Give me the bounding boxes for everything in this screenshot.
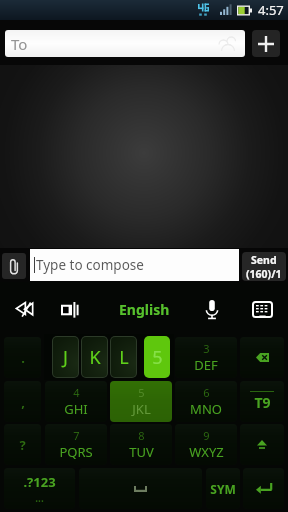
staticText: 4:57: [258, 1, 284, 19]
staticText: Send: [251, 253, 277, 267]
button[interactable]: Hide keyboard: [240, 287, 284, 331]
staticText: GHI: [64, 400, 88, 418]
staticText: TUV: [129, 443, 154, 461]
button[interactable]: Enter: [243, 468, 284, 509]
staticText: ?: [19, 436, 26, 454]
button[interactable]: To: [5, 30, 245, 57]
staticText: Type to compose: [36, 256, 144, 274]
button[interactable]: SYM: [206, 468, 240, 509]
staticText: PQRS: [59, 443, 93, 461]
button[interactable]: 8: [110, 424, 172, 465]
staticText: 2: [138, 341, 145, 356]
staticText: ABC: [129, 356, 154, 374]
button[interactable]: Sound off: [2, 286, 46, 330]
staticText: 6: [203, 385, 210, 400]
button[interactable]: K: [82, 337, 107, 377]
button[interactable]: Space: [79, 468, 202, 509]
button[interactable]: 5: [110, 381, 172, 422]
button[interactable]: 5: [144, 336, 170, 378]
staticText: L: [119, 345, 129, 370]
button[interactable]: Shift: [240, 424, 284, 465]
button[interactable]: 2: [110, 337, 172, 378]
staticText: J: [63, 345, 68, 370]
button[interactable]: .?123: [4, 468, 75, 509]
button[interactable]: T9: [240, 381, 284, 422]
button[interactable]: 4: [45, 381, 107, 422]
staticText: T9: [254, 393, 271, 412]
staticText: ...: [35, 491, 44, 505]
staticText: WXYZ: [189, 443, 224, 461]
button[interactable]: Backspace: [240, 337, 284, 378]
staticText: 1: [73, 341, 80, 356]
staticText: K: [89, 345, 101, 370]
staticText: To: [11, 34, 28, 54]
staticText: 4: [73, 385, 80, 400]
button[interactable]: 7: [45, 424, 107, 465]
button[interactable]: ?: [4, 424, 41, 465]
button[interactable]: L: [111, 337, 136, 377]
button[interactable]: English: [100, 287, 188, 331]
staticText: English: [119, 300, 170, 319]
button[interactable]: J: [53, 337, 78, 377]
staticText: 7: [73, 428, 80, 443]
staticText: (160)/1: [246, 267, 282, 281]
button[interactable]: Keyboard size: [49, 287, 93, 331]
staticText: MNO: [190, 400, 222, 418]
staticText: .?123: [23, 473, 56, 491]
staticText: JKL: [132, 400, 151, 418]
button[interactable]: 1: [45, 337, 107, 378]
button[interactable]: 6: [175, 381, 237, 422]
staticText: 9: [203, 428, 210, 443]
button[interactable]: .: [4, 337, 41, 378]
staticText: 8: [138, 428, 145, 443]
button[interactable]: Send: [242, 252, 286, 281]
staticText: .: [21, 349, 25, 367]
staticText: 3: [203, 341, 210, 356]
button[interactable]: Type to compose: [30, 249, 239, 281]
button[interactable]: Attach: [2, 253, 26, 279]
staticText: ,: [21, 393, 25, 411]
button[interactable]: ,: [4, 381, 41, 422]
staticText: SYM: [210, 481, 236, 497]
button[interactable]: Voice input: [190, 287, 234, 331]
staticText: DEF: [194, 356, 218, 374]
button[interactable]: 9: [175, 424, 237, 465]
staticText: 5: [138, 385, 145, 400]
button[interactable]: Add recipient: [252, 30, 280, 57]
staticText: 5: [152, 345, 163, 370]
button[interactable]: 3: [175, 337, 237, 378]
